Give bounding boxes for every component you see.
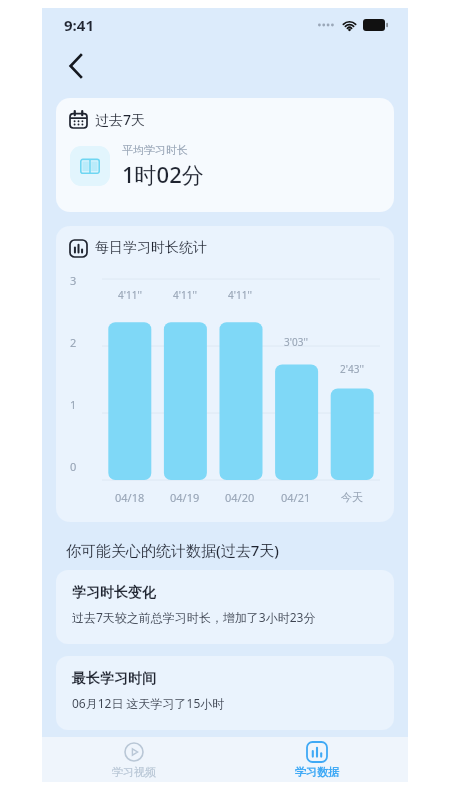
staticText: 4'11''	[228, 288, 252, 302]
staticText: 学习数据	[295, 765, 339, 779]
staticText: 最长学习时间	[72, 670, 156, 688]
staticText: 今天	[341, 490, 363, 504]
staticText: 过去7天	[95, 110, 146, 129]
staticText: 1	[70, 397, 77, 412]
button[interactable]: 学习视频	[42, 737, 225, 782]
button[interactable]: 最长学习时间	[56, 656, 394, 730]
staticText: 0	[70, 459, 77, 474]
button[interactable]: 每日学习时长统计	[56, 226, 394, 522]
staticText: 4'11''	[173, 288, 197, 302]
staticText: 04/19	[170, 490, 200, 505]
staticText: 4'11''	[118, 288, 142, 302]
staticText: 3'03''	[284, 335, 308, 349]
button[interactable]: 过去7天	[56, 98, 394, 212]
staticText: 学习视频	[112, 765, 156, 779]
staticText: 学习时长变化	[72, 584, 156, 602]
button[interactable]: 学习数据	[225, 737, 408, 782]
staticText: 04/18	[115, 490, 145, 505]
staticText: 平均学习时长	[122, 143, 188, 157]
staticText: 你可能关心的统计数据(过去7天)	[66, 540, 279, 560]
staticText: 过去7天较之前总学习时长，增加了3小时23分	[72, 609, 316, 625]
staticText: 06月12日 这天学习了15小时	[72, 695, 225, 711]
button[interactable]: 学习时长变化	[56, 570, 394, 644]
staticText: 每日学习时长统计	[95, 239, 207, 257]
staticText: 9:41	[64, 15, 94, 35]
staticText: 2	[70, 335, 77, 350]
staticText: 1时02分	[122, 159, 204, 189]
staticText: 2'43''	[340, 362, 364, 376]
button[interactable]: Back	[56, 47, 94, 85]
staticText: 04/20	[225, 490, 255, 505]
staticText: 3	[70, 273, 77, 288]
staticText: 04/21	[281, 490, 311, 505]
